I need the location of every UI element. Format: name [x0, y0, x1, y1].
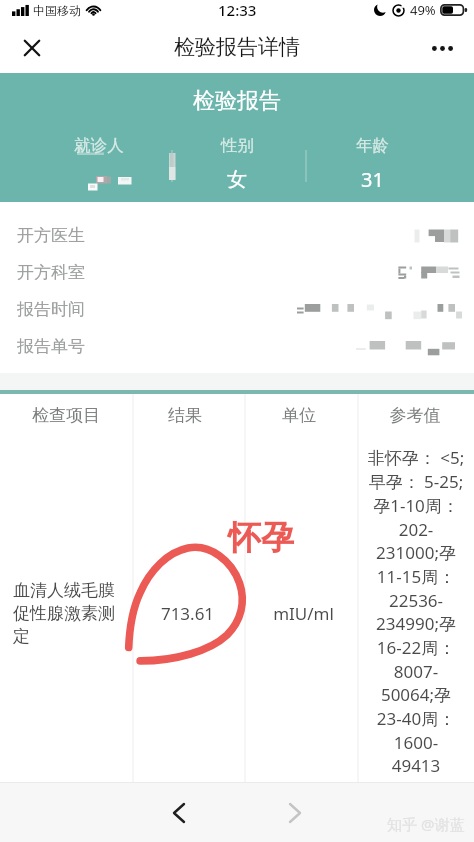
staticText: 血清人绒毛膜 促性腺激素测 定 — [13, 580, 133, 647]
staticText: 怀孕 — [228, 517, 294, 559]
staticText: 结果 — [130, 405, 240, 426]
staticText: 开方医生 — [17, 225, 85, 246]
staticText: 非怀孕： <5; 早孕： 5-25; 孕1-10周： 202- 231000;孕… — [359, 446, 473, 777]
button[interactable]: Close — [13, 29, 51, 67]
staticText: 49% — [410, 1, 436, 19]
button[interactable]: 报告单号 — [0, 328, 474, 365]
staticText: 报告时间 — [17, 299, 85, 320]
staticText: 713.61 — [135, 602, 240, 625]
button[interactable]: More options — [423, 29, 461, 67]
staticText: 31 — [361, 166, 384, 193]
staticText: 报告单号 — [17, 336, 85, 357]
staticText: mIU/ml — [251, 602, 356, 625]
staticText: 检验报告详情 — [174, 34, 300, 58]
staticText: 12:33 — [218, 0, 257, 20]
staticText: 单位 — [244, 405, 354, 426]
staticText: 中国移动 — [33, 3, 81, 18]
staticText: 检查项目 — [11, 405, 121, 426]
staticText: 检验报告 — [193, 87, 281, 115]
staticText: 年龄 — [356, 135, 389, 156]
button[interactable]: 报告时间 — [0, 291, 474, 328]
button[interactable]: Forward — [273, 791, 317, 835]
button[interactable]: Back — [157, 791, 201, 835]
staticText: 开方科室 — [17, 262, 85, 283]
staticText: 就诊人 — [74, 135, 124, 156]
staticText: 知乎 @谢蓝 — [387, 814, 465, 834]
staticText: 性别 — [221, 135, 254, 156]
staticText: 女 — [227, 167, 247, 192]
button[interactable]: 开方科室 — [0, 254, 474, 291]
staticText: 参考值 — [360, 405, 470, 426]
button[interactable]: 开方医生 — [0, 217, 474, 254]
